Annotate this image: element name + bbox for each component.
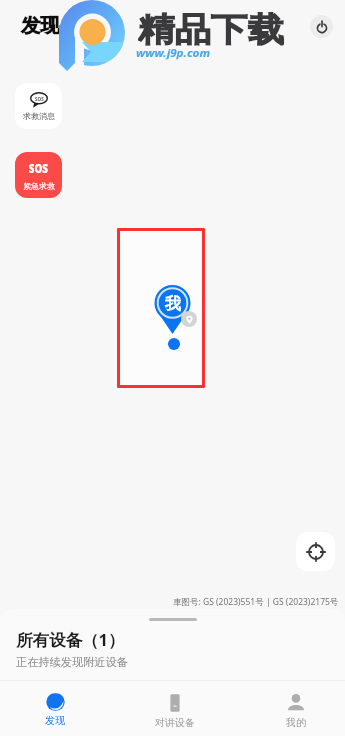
button[interactable]: SOS: [15, 152, 62, 198]
button[interactable]: 我的: [252, 693, 340, 729]
staticText: 我: [165, 294, 181, 314]
button[interactable]: 对讲设备: [131, 693, 219, 729]
staticText: 正在持续发现附近设备: [16, 655, 128, 669]
staticText: 精品下载: [138, 9, 284, 50]
staticText: 发现: [21, 13, 60, 38]
staticText: 我的: [286, 716, 306, 729]
staticText: 所有设备（1）: [16, 628, 125, 651]
button[interactable]: Locate me: [296, 532, 335, 571]
button[interactable]: Power: [310, 15, 333, 38]
staticText: 車图号: GS (2023)551号 | GS (2023)2175号: [173, 596, 339, 608]
staticText: 紧急求救: [23, 181, 55, 191]
staticText: 发现: [45, 714, 65, 727]
staticText: SOS: [29, 160, 48, 177]
button[interactable]: SOS: [15, 83, 62, 129]
button[interactable]: 发现: [11, 693, 99, 727]
staticText: 对讲设备: [155, 716, 195, 729]
staticText: www.j9p.com: [136, 46, 210, 59]
staticText: SOS: [35, 96, 44, 102]
staticText: 求救消息: [23, 111, 55, 121]
